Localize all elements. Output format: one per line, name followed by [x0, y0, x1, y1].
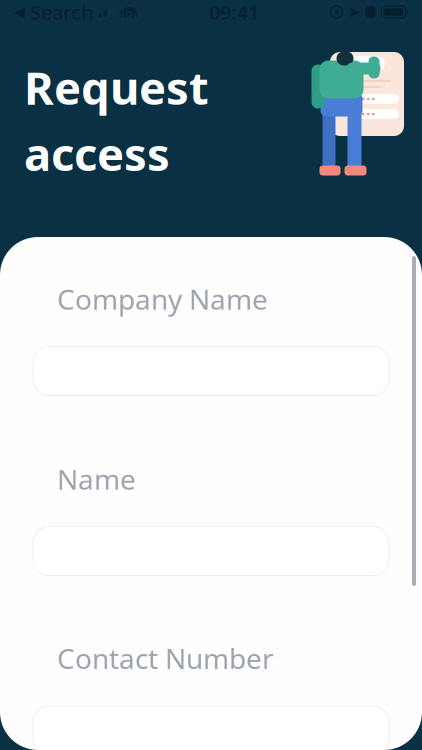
button[interactable]: Contact Number [0, 677, 422, 750]
staticText: Company Name [57, 280, 268, 317]
staticText: Name [57, 460, 136, 498]
staticText: ➤ [347, 3, 360, 21]
button[interactable]: Name [0, 498, 422, 576]
staticText: Request [24, 57, 209, 117]
staticText: Contact Number [57, 640, 274, 677]
button[interactable]: Company Name [0, 317, 422, 395]
staticText: 09:41 [209, 0, 259, 25]
staticText: ◀ [14, 4, 25, 20]
staticText: Search [25, 0, 94, 25]
staticText: access [24, 123, 170, 183]
